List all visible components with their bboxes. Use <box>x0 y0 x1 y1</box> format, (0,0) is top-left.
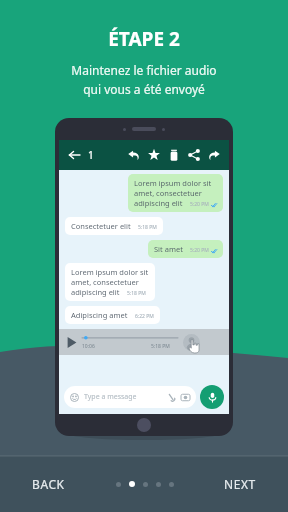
staticText: BACK <box>32 476 65 492</box>
button[interactable]: Consectetuer elit <box>65 217 163 235</box>
button[interactable]: Lorem ipsum dolor sit <box>128 174 223 212</box>
other: Play <box>66 337 77 348</box>
staticText: Type a message <box>84 392 137 402</box>
button[interactable]: Forward <box>204 145 224 165</box>
staticText: 6:22 PM <box>135 313 154 320</box>
button[interactable]: Share <box>184 145 204 165</box>
button[interactable]: Adipiscing amet <box>65 306 160 324</box>
other: Attach <box>167 393 176 402</box>
button[interactable]: NEXT <box>214 468 266 500</box>
staticText: adipiscing elit <box>71 287 120 297</box>
staticText: 1 <box>88 148 94 162</box>
staticText: amet, consectetuer <box>71 277 139 287</box>
button[interactable]: Lorem ipsum dolor sit <box>65 263 155 301</box>
staticText: Lorem ipsum dolor sit <box>134 178 212 188</box>
staticText: adipiscing elit <box>134 198 183 208</box>
staticText: ÉTAPE 2 <box>108 26 180 52</box>
staticText: Adipiscing amet <box>71 310 128 320</box>
button[interactable]: Back <box>64 145 84 165</box>
button[interactable]: Delete <box>164 145 184 165</box>
staticText: NEXT <box>224 476 256 492</box>
other: Emoji <box>70 393 79 402</box>
staticText: Sit amet <box>154 244 183 254</box>
staticText: amet, consectetuer <box>134 188 202 198</box>
staticText: 5:20 PM <box>190 201 209 208</box>
staticText: qui vous a été envoyé <box>83 81 205 97</box>
button[interactable]: BACK <box>22 468 75 500</box>
button[interactable]: Play <box>59 329 229 355</box>
staticText: Consectetuer elit <box>71 221 131 231</box>
staticText: 5:20 PM <box>190 247 209 254</box>
staticText: 5:18 PM <box>138 224 157 231</box>
staticText: Maintenez le fichier audio <box>71 62 217 78</box>
button[interactable]: Sit amet <box>148 240 223 258</box>
staticText: 10:06 <box>82 343 95 350</box>
other: Camera <box>181 393 190 402</box>
button[interactable]: Record voice message <box>200 385 224 409</box>
staticText: Lorem ipsum dolor sit <box>71 267 149 277</box>
staticText: 5:18 PM <box>151 343 170 350</box>
button[interactable]: Emoji <box>64 386 196 408</box>
button[interactable]: Reply <box>124 145 144 165</box>
staticText: 5:18 PM <box>127 290 146 297</box>
button[interactable]: Star <box>144 145 164 165</box>
